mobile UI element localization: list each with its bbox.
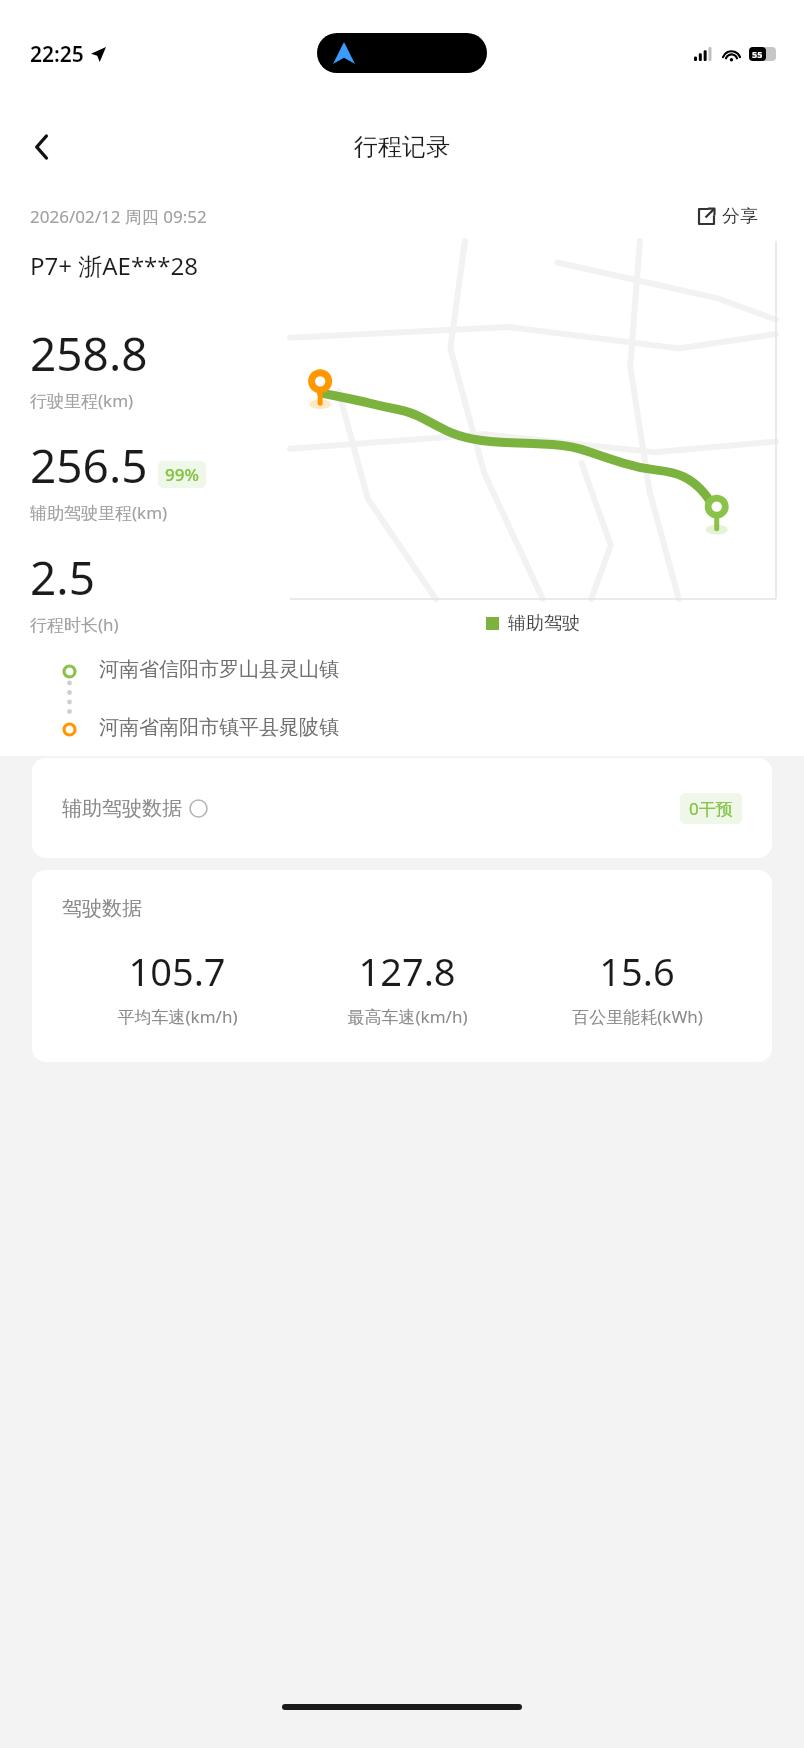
staticText: 258.8	[30, 322, 148, 385]
staticText: 行程时长(h)	[30, 613, 119, 636]
staticText: 55	[752, 48, 763, 60]
staticText: 0干预	[689, 797, 733, 820]
staticText: 辅助驾驶里程(km)	[30, 501, 168, 524]
staticText: 分享	[722, 205, 758, 228]
staticText: 驾驶数据	[62, 896, 142, 921]
staticText: 最高车速(km/h)	[347, 1005, 468, 1028]
staticText: 105.7	[128, 945, 226, 997]
staticText: 99%	[165, 463, 199, 486]
staticText: 百公里能耗(kWh)	[572, 1005, 703, 1028]
staticText: 河南省信阳市罗山县灵山镇	[99, 657, 339, 682]
staticText: 辅助驾驶	[508, 612, 580, 635]
button[interactable]: 分享	[680, 196, 776, 237]
staticText: 行驶里程(km)	[30, 389, 134, 412]
staticText: P7+ 浙AE***28	[30, 249, 199, 282]
staticText: 15.6	[599, 945, 675, 997]
staticText: 127.8	[358, 945, 456, 997]
staticText: 22:25	[30, 40, 84, 69]
staticText: 河南省南阳市镇平县晁陂镇	[99, 715, 339, 740]
staticText: 辅助驾驶数据	[62, 796, 182, 821]
button[interactable]: 辅助驾驶数据	[32, 758, 772, 858]
button[interactable]: Back	[18, 123, 66, 171]
staticText: 256.5	[30, 434, 148, 497]
staticText: 2026/02/12 周四 09:52	[30, 205, 207, 228]
staticText: 2.5	[30, 546, 95, 609]
staticText: 行程记录	[354, 132, 450, 162]
staticText: 平均车速(km/h)	[117, 1005, 238, 1028]
